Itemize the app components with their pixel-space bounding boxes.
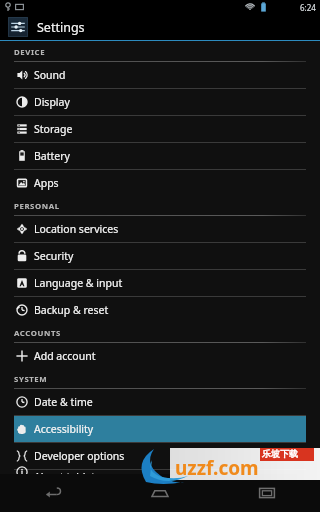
button[interactable]: Battery <box>0 143 320 169</box>
button[interactable]: Add account <box>0 343 320 369</box>
button[interactable]: Sound <box>0 62 320 88</box>
staticText: 6:24 <box>300 2 316 13</box>
staticText: Date & time <box>34 395 93 409</box>
button[interactable]: Accessibility <box>0 416 320 442</box>
staticText: Battery <box>34 149 70 163</box>
staticText: Accessibility <box>34 422 94 436</box>
staticText: Language & input <box>34 276 123 290</box>
button[interactable]: Storage <box>0 116 320 142</box>
button[interactable]: Date & time <box>0 389 320 415</box>
other: Settings app icon <box>8 17 28 37</box>
button[interactable]: Location services <box>0 216 320 242</box>
button[interactable]: Home <box>106 474 213 512</box>
staticText: Location services <box>34 222 119 236</box>
staticText: ACCOUNTS <box>14 328 61 339</box>
staticText: DEVICE <box>14 47 46 58</box>
button[interactable]: Security <box>0 243 320 269</box>
button[interactable]: Apps <box>0 170 320 196</box>
staticText: SYSTEM <box>14 374 48 385</box>
staticText: About tablet <box>34 470 96 474</box>
staticText: Developer options <box>34 449 125 463</box>
button[interactable]: Back <box>0 474 106 512</box>
staticText: uzzf.com <box>175 455 259 481</box>
button[interactable]: Language & input <box>0 270 320 296</box>
staticText: PERSONAL <box>14 201 60 212</box>
button[interactable]: Display <box>0 89 320 115</box>
button[interactable]: About tablet <box>0 470 320 474</box>
staticText: Apps <box>34 176 59 190</box>
button[interactable]: Developer options <box>0 443 320 469</box>
button[interactable]: Backup & reset <box>0 297 320 323</box>
staticText: Add account <box>34 349 96 363</box>
staticText: 乐坡下载 <box>262 448 298 459</box>
staticText: Settings <box>37 19 85 36</box>
staticText: Sound <box>34 68 66 82</box>
staticText: Storage <box>34 122 73 136</box>
button[interactable]: Recent apps <box>213 474 320 512</box>
staticText: Backup & reset <box>34 303 109 317</box>
staticText: Display <box>34 95 70 109</box>
staticText: Security <box>34 249 74 263</box>
